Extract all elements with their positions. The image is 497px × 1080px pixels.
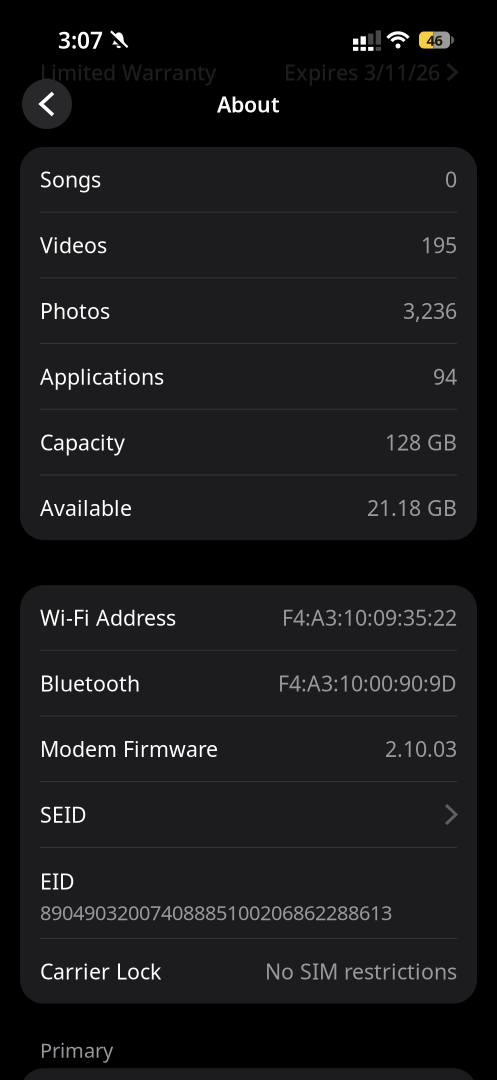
staticText: 195 (421, 231, 457, 259)
staticText: SEID (40, 800, 87, 829)
staticText: 0 (445, 165, 457, 193)
staticText: F4:A3:10:09:35:22 (282, 603, 457, 631)
button[interactable]: Back (22, 79, 72, 129)
staticText: Applications (40, 362, 164, 390)
button[interactable]: Videos (20, 213, 477, 277)
staticText: About (217, 90, 280, 118)
staticText: 89049032007408885100206862288613 (40, 899, 392, 926)
staticText: Modem Firmware (40, 735, 218, 763)
staticText: Carrier Lock (40, 957, 161, 985)
staticText: Photos (40, 296, 110, 325)
staticText: 3:07 (58, 25, 103, 55)
button[interactable]: Bluetooth (20, 651, 477, 715)
button[interactable]: SEID (20, 782, 477, 847)
staticText: 2.10.03 (385, 735, 457, 763)
button[interactable]: EID (20, 848, 477, 938)
staticText: EID (40, 867, 75, 895)
staticText: 3,236 (403, 296, 457, 325)
staticText: Songs (40, 165, 101, 193)
button[interactable]: Capacity (20, 410, 477, 474)
staticText: Available (40, 494, 132, 522)
button[interactable]: Modem Firmware (20, 716, 477, 781)
staticText: Limited Warranty (40, 58, 216, 86)
button[interactable]: Wi-Fi Address (20, 585, 477, 650)
button[interactable]: Applications (20, 344, 477, 409)
staticText: Bluetooth (40, 669, 140, 697)
button[interactable]: Available (20, 475, 477, 540)
staticText: 94 (433, 362, 457, 390)
staticText: Capacity (40, 428, 125, 456)
button[interactable]: Photos (20, 278, 477, 343)
staticText: F4:A3:10:00:90:9D (278, 669, 457, 697)
staticText: No SIM restrictions (265, 957, 457, 985)
button[interactable]: Songs (20, 147, 477, 212)
staticText: Wi-Fi Address (40, 603, 176, 631)
staticText: Expires 3/11/26 (284, 58, 440, 86)
button[interactable]: Limited Warranty (0, 58, 497, 86)
staticText: Videos (40, 231, 107, 259)
staticText: 21.18 GB (367, 494, 457, 522)
staticText: 128 GB (385, 428, 457, 456)
staticText: 46 (426, 30, 442, 50)
button[interactable]: Carrier Lock (20, 939, 477, 1004)
staticText: Primary (40, 1037, 113, 1063)
